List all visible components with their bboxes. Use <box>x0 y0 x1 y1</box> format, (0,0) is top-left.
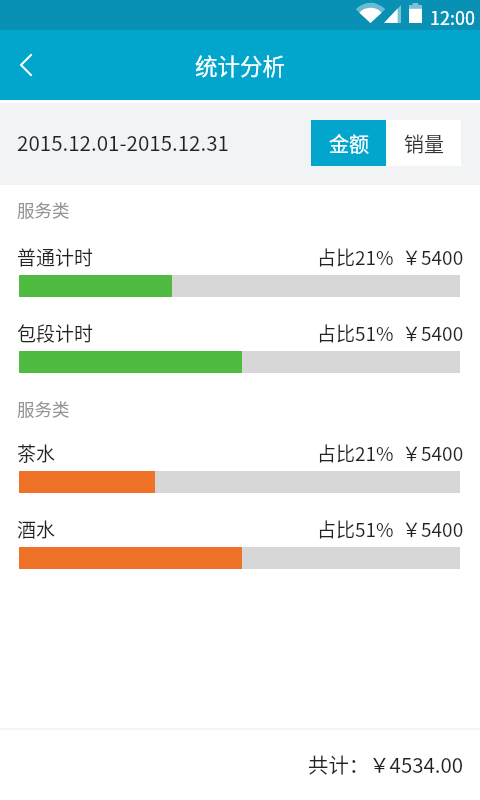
staticText: ￥5400 <box>402 515 464 541</box>
button[interactable]: 茶水 <box>0 441 480 493</box>
staticText: 酒水 <box>17 515 56 541</box>
other: Battery <box>409 3 422 23</box>
staticText: 服务类 <box>17 197 70 222</box>
staticText: 销量 <box>404 129 444 158</box>
staticText: ￥5400 <box>402 439 464 465</box>
staticText: 占比51% <box>317 319 394 345</box>
staticText: 普通计时 <box>17 243 94 269</box>
staticText: 包段计时 <box>17 319 94 345</box>
staticText: 占比21% <box>317 439 394 465</box>
button[interactable]: 酒水 <box>0 517 480 569</box>
other: Wi-Fi <box>358 4 383 23</box>
button[interactable]: 销量 <box>386 120 461 166</box>
staticText: 12:00 <box>430 4 475 30</box>
staticText: ￥5400 <box>402 243 464 269</box>
button[interactable]: Back <box>0 39 52 91</box>
button[interactable]: 普通计时 <box>0 245 480 297</box>
other: Cellular signal <box>384 5 401 23</box>
staticText: 共计：￥4534.00 <box>308 749 464 779</box>
button[interactable]: 金额 <box>311 120 386 166</box>
staticText: 金额 <box>329 129 369 158</box>
staticText: 2015.12.01-2015.12.31 <box>17 127 229 157</box>
staticText: 茶水 <box>17 439 56 465</box>
staticText: 服务类 <box>17 396 70 421</box>
staticText: 统计分析 <box>195 49 286 82</box>
staticText: 占比21% <box>317 243 394 269</box>
staticText: ￥5400 <box>402 319 464 345</box>
staticText: 占比51% <box>317 515 394 541</box>
button[interactable]: 包段计时 <box>0 321 480 373</box>
button[interactable]: 2015.12.01-2015.12.31 <box>17 127 229 157</box>
